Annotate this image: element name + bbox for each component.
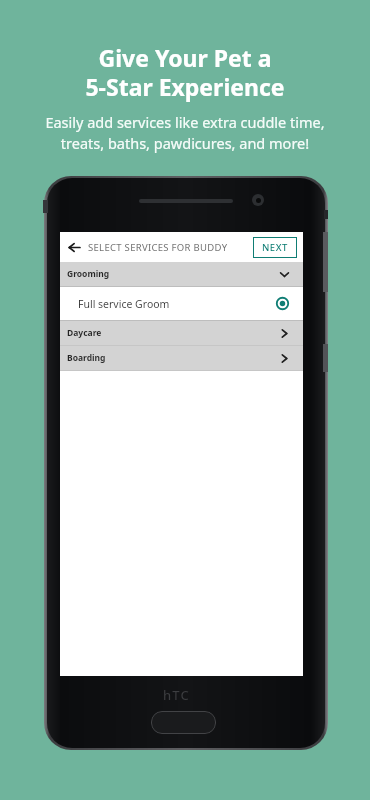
- staticText: Grooming: [67, 268, 110, 280]
- button[interactable]: NEXT: [253, 237, 297, 258]
- staticText: Full service Groom: [78, 297, 170, 311]
- button[interactable]: Full service Groom: [60, 287, 303, 320]
- staticText: SELECT SERVICES FOR BUDDY: [88, 241, 228, 254]
- staticText: Daycare: [67, 327, 102, 339]
- button[interactable]: Boarding: [60, 346, 303, 370]
- button[interactable]: Home: [151, 711, 216, 734]
- button[interactable]: Back: [60, 232, 88, 262]
- staticText: Easily add services like extra cuddle ti…: [45, 112, 325, 153]
- staticText: Give Your Pet a 5-Star Experience: [85, 42, 285, 103]
- staticText: hTC: [163, 686, 191, 704]
- staticText: Boarding: [67, 352, 106, 364]
- button[interactable]: Grooming: [60, 262, 303, 286]
- button[interactable]: Daycare: [60, 321, 303, 345]
- staticText: NEXT: [262, 241, 288, 254]
